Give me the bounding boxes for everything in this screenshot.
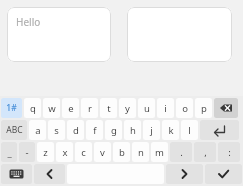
button[interactable]: ABC [1,120,27,140]
staticText: f [93,124,97,137]
button[interactable]: c [75,142,92,162]
staticText: q [30,102,36,115]
staticText: , [204,146,207,159]
button[interactable]: x [56,142,73,162]
button[interactable]: b [113,142,130,162]
button[interactable]: l [181,120,198,140]
staticText: 1# [6,102,17,114]
staticText: l [188,124,191,137]
button[interactable]: t [100,98,117,118]
staticText: g [111,124,117,137]
button[interactable]: - [19,142,35,162]
button[interactable]: k [162,120,179,140]
staticText: t [107,102,111,115]
button[interactable]: q [24,98,41,118]
staticText: a [35,124,41,137]
staticText: r [88,102,92,115]
button[interactable]: y [119,98,136,118]
button[interactable]: n [132,142,149,162]
staticText: e [68,102,74,115]
button[interactable]: u [138,98,155,118]
button[interactable]: e [62,98,79,118]
staticText: ABC [6,124,23,136]
staticText: w [48,102,56,115]
button[interactable]: Previous [34,164,65,184]
staticText: Hello [16,15,41,29]
button[interactable]: , [194,142,216,162]
staticText: . [180,146,183,159]
button[interactable]: Done [205,164,242,184]
button[interactable]: j [143,120,160,140]
staticText: c [81,146,86,159]
button[interactable]: Switch keyboard [1,164,32,184]
staticText: n [138,146,144,159]
staticText: - [25,146,29,159]
button[interactable]: m [151,142,168,162]
button[interactable]: h [124,120,141,140]
staticText: i [164,102,167,115]
button[interactable]: r [81,98,98,118]
staticText: s [54,124,59,137]
staticText: o [182,102,188,115]
button[interactable]: w [43,98,60,118]
button[interactable]: Next [166,164,203,184]
button[interactable]: f [86,120,103,140]
button[interactable]: Backspace [214,98,238,118]
staticText: b [119,146,125,159]
button[interactable]: Enter [200,120,239,140]
button[interactable]: s [48,120,65,140]
staticText: v [100,146,105,159]
staticText: z [43,146,48,159]
staticText: k [168,124,174,137]
button[interactable]: i [157,98,174,118]
button[interactable]: Hello [7,7,111,62]
staticText: x [62,146,68,159]
staticText: : [228,146,231,159]
staticText: j [150,124,153,137]
staticText: p [201,102,207,115]
button[interactable]: _ [1,142,17,162]
button[interactable]: p [195,98,212,118]
button[interactable]: o [176,98,193,118]
staticText: _ [7,146,12,159]
staticText: u [144,102,150,115]
staticText: h [130,124,136,137]
button[interactable] [127,7,232,62]
button[interactable]: z [37,142,54,162]
button[interactable]: . [170,142,192,162]
staticText: d [73,124,79,137]
button[interactable]: a [29,120,46,140]
button[interactable]: d [67,120,84,140]
button[interactable]: v [94,142,111,162]
button[interactable]: 1# [1,98,22,118]
staticText: m [155,146,164,159]
staticText: y [125,102,130,115]
button[interactable]: g [105,120,122,140]
button[interactable]: : [218,142,240,162]
